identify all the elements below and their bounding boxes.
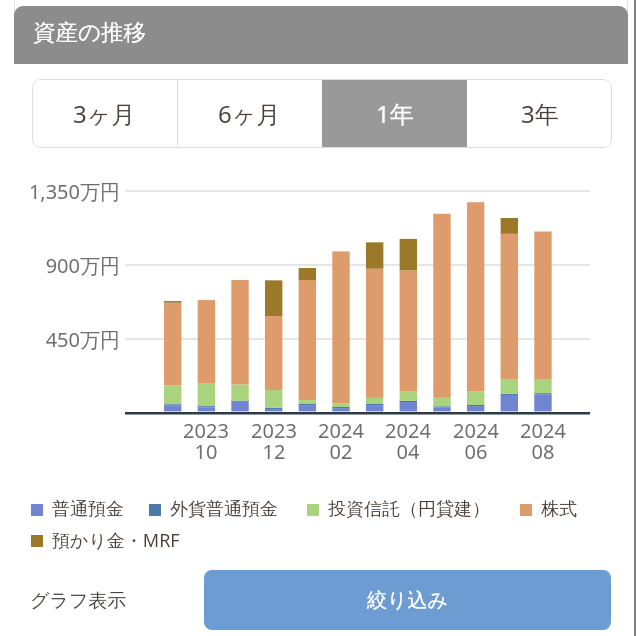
staticText: 預かり金・MRF	[52, 528, 180, 553]
staticText: 普通預金	[52, 498, 124, 521]
staticText: 3年	[521, 97, 559, 130]
staticText: 450万円	[14, 326, 120, 353]
button[interactable]: 3ヶ月	[32, 79, 177, 148]
staticText: グラフ表示	[30, 589, 127, 613]
staticText: 900万円	[14, 252, 120, 279]
staticText: 1年	[376, 97, 414, 130]
staticText: 外貨普通預金	[170, 498, 278, 521]
staticText: 株式	[541, 498, 577, 521]
staticText: 投資信託（円貸建）	[328, 498, 490, 521]
staticText: 2024 02	[306, 417, 376, 465]
button[interactable]: 3年	[467, 79, 612, 148]
button[interactable]: 1年	[322, 79, 467, 148]
staticText: 2023 12	[239, 417, 309, 465]
button[interactable]: 6ヶ月	[177, 79, 322, 148]
staticText: 2024 04	[373, 417, 443, 465]
button[interactable]: 絞り込み	[204, 570, 611, 630]
staticText: 2023 10	[171, 417, 241, 465]
staticText: 2024 06	[441, 417, 511, 465]
staticText: 絞り込み	[367, 588, 448, 613]
staticText: 資産の推移	[33, 18, 147, 46]
staticText: 6ヶ月	[218, 97, 281, 130]
staticText: 3ヶ月	[73, 97, 136, 130]
staticText: 1,350万円	[14, 178, 120, 205]
staticText: 2024 08	[508, 417, 578, 465]
